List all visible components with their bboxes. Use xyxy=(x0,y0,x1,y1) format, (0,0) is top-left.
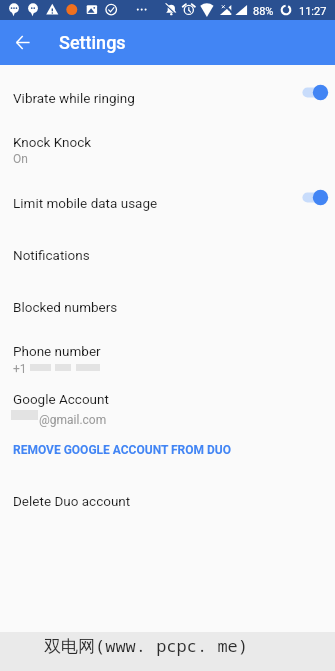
staticText: @gmail.com xyxy=(39,413,107,427)
staticText: Google Account xyxy=(13,391,109,407)
button[interactable] xyxy=(0,472,335,524)
staticText: 双电网(www. pcpc. me) xyxy=(44,634,248,657)
staticText: Limit mobile data usage xyxy=(13,195,158,211)
button[interactable]: Back xyxy=(10,28,36,54)
button[interactable] xyxy=(0,224,335,276)
staticText: Vibrate while ringing xyxy=(13,90,135,106)
staticText: On xyxy=(13,152,28,166)
staticText: 88% xyxy=(253,5,274,18)
staticText: Delete Duo account xyxy=(13,493,131,509)
staticText: +1 xyxy=(13,362,27,376)
staticText: Phone number xyxy=(13,343,101,359)
staticText: REMOVE GOOGLE ACCOUNT FROM DUO xyxy=(13,443,232,457)
staticText: Notifications xyxy=(13,247,90,263)
button[interactable] xyxy=(0,276,335,328)
staticText: Blocked numbers xyxy=(13,299,118,315)
staticText: Settings xyxy=(59,32,126,53)
button[interactable] xyxy=(0,434,335,472)
staticText: 11:27 xyxy=(299,5,327,18)
button[interactable] xyxy=(0,172,335,224)
button[interactable] xyxy=(0,70,335,114)
button[interactable] xyxy=(0,382,335,434)
button[interactable] xyxy=(0,114,335,172)
staticText: Knock Knock xyxy=(13,134,92,150)
button[interactable] xyxy=(0,328,335,382)
